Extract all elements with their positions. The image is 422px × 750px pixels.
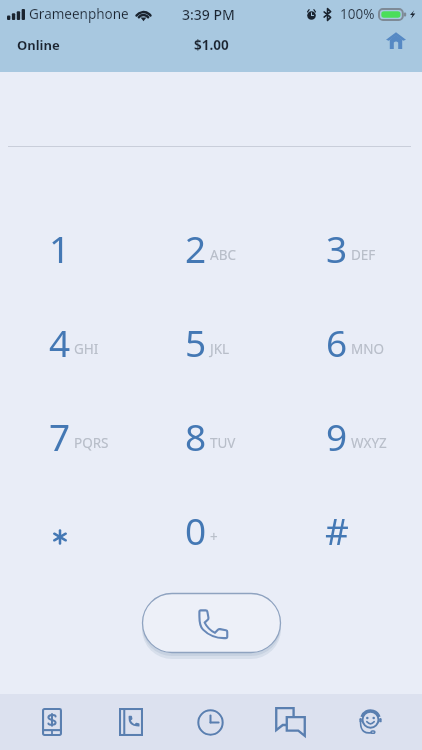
staticText: 3 bbox=[326, 223, 348, 273]
button[interactable]: 3 bbox=[281, 201, 422, 295]
staticText: GHI bbox=[74, 340, 99, 358]
staticText: WXYZ bbox=[351, 434, 387, 452]
button[interactable]: 1 bbox=[0, 201, 140, 295]
staticText: 4 bbox=[49, 317, 71, 367]
staticText: 2 bbox=[185, 223, 207, 273]
staticText: DEF bbox=[351, 246, 376, 264]
button[interactable]: Contacts bbox=[91, 694, 170, 750]
button[interactable]: 8 bbox=[140, 389, 281, 483]
staticText: TUV bbox=[210, 434, 236, 452]
button[interactable]: 9 bbox=[281, 389, 422, 483]
staticText: + bbox=[210, 528, 218, 546]
staticText: 6 bbox=[326, 317, 348, 367]
button[interactable]: Recent calls bbox=[170, 694, 250, 750]
button[interactable]: Messages bbox=[250, 694, 330, 750]
button[interactable]: # bbox=[281, 483, 422, 577]
button[interactable]: 2 bbox=[140, 201, 281, 295]
button[interactable] bbox=[0, 483, 140, 577]
staticText: Online bbox=[17, 36, 60, 54]
staticText: 0 bbox=[185, 505, 207, 555]
staticText: JKL bbox=[210, 340, 230, 358]
button[interactable]: Recharge bbox=[12, 694, 91, 750]
button[interactable]: 6 bbox=[281, 295, 422, 389]
button[interactable]: Support bbox=[330, 694, 410, 750]
staticText: PQRS bbox=[74, 434, 109, 452]
button[interactable]: 7 bbox=[0, 389, 140, 483]
button[interactable]: 0 bbox=[140, 483, 281, 577]
button[interactable]: 4 bbox=[0, 295, 140, 389]
staticText: Grameenphone bbox=[29, 5, 129, 23]
staticText: ABC bbox=[210, 246, 236, 264]
staticText: 100% bbox=[340, 5, 375, 23]
staticText: $1.00 bbox=[194, 36, 229, 54]
staticText: 9 bbox=[326, 411, 348, 461]
staticText: 5 bbox=[185, 317, 207, 367]
button[interactable]: Call bbox=[142, 593, 281, 659]
staticText: 8 bbox=[185, 411, 207, 461]
staticText: 7 bbox=[49, 411, 71, 461]
staticText: 3:39 PM bbox=[182, 5, 235, 24]
button[interactable]: Home bbox=[379, 33, 413, 67]
staticText: # bbox=[325, 505, 349, 555]
button[interactable]: 5 bbox=[140, 295, 281, 389]
staticText: MNO bbox=[351, 340, 385, 358]
staticText: 1 bbox=[49, 223, 71, 273]
